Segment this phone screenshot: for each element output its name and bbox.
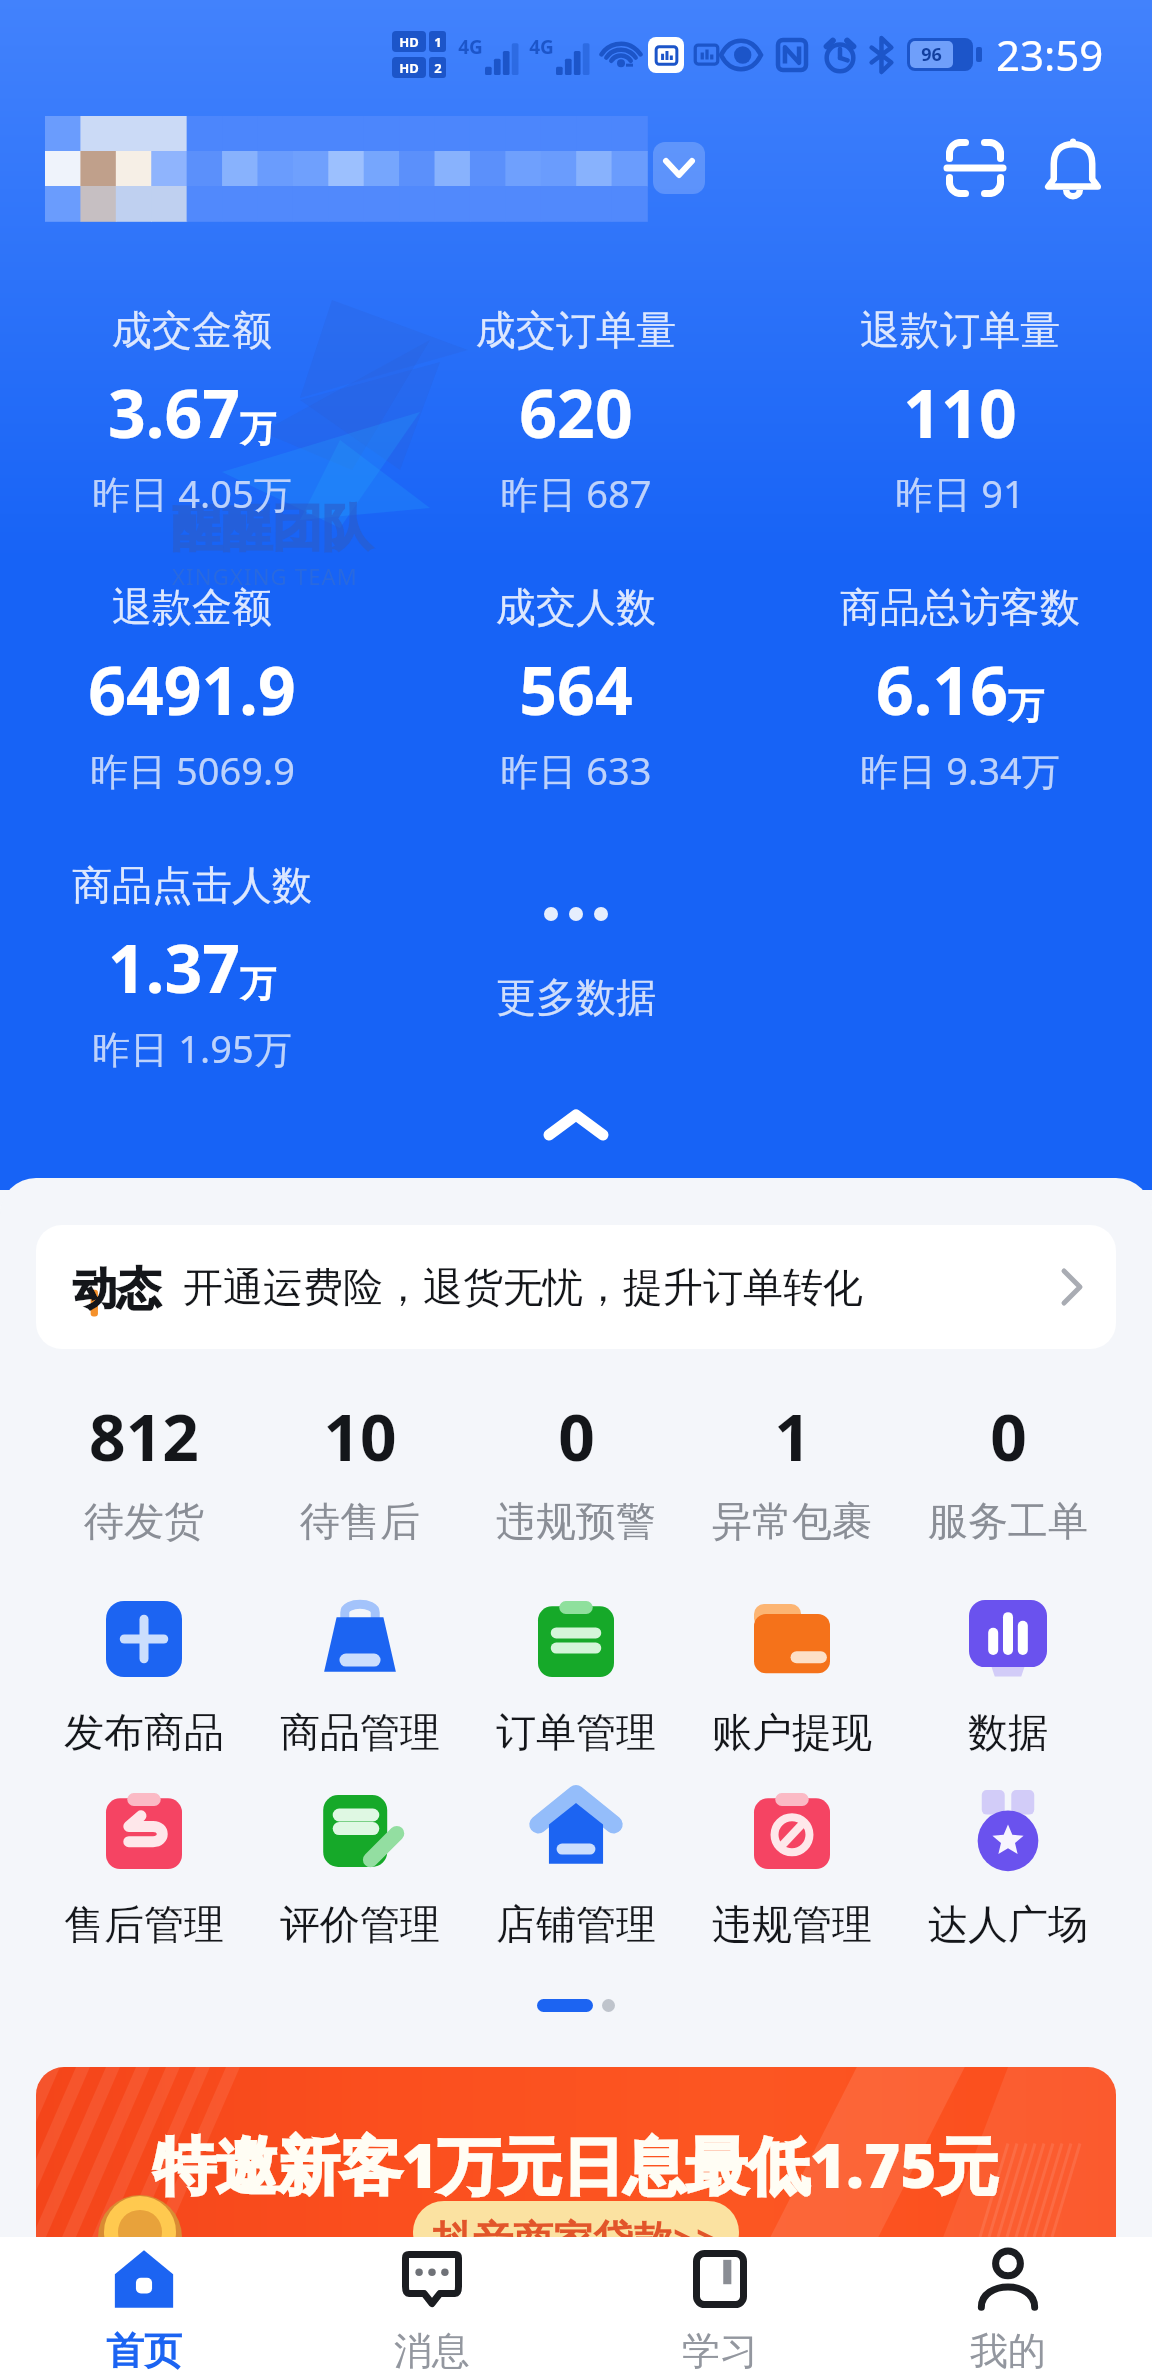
staticText: 1.37 (108, 922, 240, 1012)
staticText: 商品总访客数 (840, 582, 1080, 632)
staticText: 待售后 (300, 1496, 420, 1546)
staticText: 23:59 (996, 26, 1104, 83)
staticText: 商品管理 (280, 1707, 440, 1757)
staticText: 店铺管理 (496, 1899, 656, 1949)
staticText: 6.16 (876, 644, 1008, 734)
button[interactable]: 1 (684, 1393, 900, 1546)
button[interactable]: 0 (900, 1393, 1116, 1546)
staticText: 商品点击人数 (72, 860, 312, 910)
staticText: 学习 (682, 2327, 758, 2375)
staticText: 动态 (73, 1262, 161, 1317)
staticText: 万 (240, 406, 276, 451)
staticText: 达人广场 (928, 1899, 1088, 1949)
button[interactable]: 0 (468, 1393, 684, 1546)
staticText: 消息 (394, 2327, 470, 2375)
button[interactable]: Scan (932, 125, 1018, 211)
staticText: 成交金额 (112, 305, 272, 355)
button[interactable]: 商品总访客数 (768, 582, 1152, 796)
staticText: HD (399, 33, 419, 51)
staticText: 昨日 91 (895, 467, 1025, 519)
staticText: 待发货 (84, 1496, 204, 1546)
staticText: 0 (558, 1393, 595, 1480)
staticText: 开通运费险，退货无忧，提升订单转化 (183, 1262, 863, 1312)
staticText: 违规管理 (712, 1899, 872, 1949)
staticText: 订单管理 (496, 1707, 656, 1757)
button[interactable]: 动态 (36, 1225, 1116, 1349)
staticText: 昨日 5069.9 (90, 744, 295, 796)
button[interactable]: 商品管理 (252, 1597, 468, 1757)
button[interactable]: 售后管理 (36, 1789, 252, 1949)
staticText: 退款金额 (112, 582, 272, 632)
button[interactable]: 812 (36, 1393, 252, 1546)
button[interactable]: Switch shop (653, 142, 705, 194)
staticText: 异常包裹 (712, 1496, 872, 1546)
staticText: 评价管理 (280, 1899, 440, 1949)
staticText: 抖音商家贷款>> (433, 2211, 719, 2237)
button[interactable]: 成交金额 (0, 305, 384, 519)
button[interactable]: 订单管理 (468, 1597, 684, 1757)
button[interactable]: 更多数据 (384, 860, 768, 1022)
staticText: 昨日 1.95万 (92, 1022, 292, 1074)
staticText: 违规预警 (496, 1496, 656, 1546)
staticText: 更多数据 (496, 972, 656, 1022)
staticText: 620 (519, 367, 633, 457)
staticText: 昨日 633 (500, 744, 652, 796)
button[interactable] (45, 116, 647, 221)
staticText: 万 (1008, 683, 1044, 728)
staticText: 账户提现 (712, 1707, 872, 1757)
staticText: 96 (921, 42, 942, 67)
staticText: 2 (434, 59, 442, 77)
staticText: 服务工单 (928, 1496, 1088, 1546)
button[interactable]: 我的 (864, 2237, 1152, 2376)
staticText: 4G (458, 34, 483, 60)
staticText: 1 (774, 1393, 811, 1480)
staticText: 万 (240, 961, 276, 1006)
staticText: 3.67 (108, 367, 240, 457)
staticText: 醒醒团队 (172, 497, 372, 560)
staticText: 昨日 9.34万 (860, 744, 1060, 796)
button[interactable]: 店铺管理 (468, 1789, 684, 1949)
staticText: 成交人数 (496, 582, 656, 632)
button[interactable]: Notifications (1030, 125, 1116, 211)
staticText: 812 (89, 1393, 199, 1480)
staticText: 成交订单量 (476, 305, 676, 355)
button[interactable]: 退款金额 (0, 582, 384, 796)
staticText: 特邀新客1万元日息最低1.75元 (153, 2122, 999, 2207)
staticText: 110 (903, 367, 1017, 457)
staticText: 我的 (970, 2327, 1046, 2375)
button[interactable]: 发布商品 (36, 1597, 252, 1757)
staticText: 1 (434, 33, 442, 51)
button[interactable]: 学习 (576, 2237, 864, 2376)
staticText: 数据 (968, 1707, 1048, 1757)
button[interactable]: 特邀新客1万元日息最低1.75元 (36, 2067, 1116, 2237)
staticText: 6491.9 (88, 644, 296, 734)
staticText: 0 (990, 1393, 1027, 1480)
staticText: 退款订单量 (860, 305, 1060, 355)
button[interactable]: 退款订单量 (768, 305, 1152, 519)
staticText: 首页 (106, 2327, 182, 2375)
button[interactable]: 成交人数 (384, 582, 768, 796)
button[interactable]: Collapse panel (486, 1090, 666, 1160)
button[interactable]: 首页 (0, 2237, 288, 2376)
staticText: 4G (529, 34, 554, 60)
staticText: XINGXING TEAM (172, 561, 358, 591)
button[interactable]: 违规管理 (684, 1789, 900, 1949)
staticText: 售后管理 (64, 1899, 224, 1949)
staticText: HD (399, 59, 419, 77)
staticText: 昨日 4.05万 (92, 467, 292, 519)
staticText: 564 (519, 644, 633, 734)
button[interactable]: 10 (252, 1393, 468, 1546)
button[interactable]: 数据 (900, 1597, 1116, 1757)
button[interactable]: 成交订单量 (384, 305, 768, 519)
button[interactable]: 商品点击人数 (0, 860, 384, 1074)
staticText: 10 (323, 1393, 397, 1480)
button[interactable]: 账户提现 (684, 1597, 900, 1757)
button[interactable]: 达人广场 (900, 1789, 1116, 1949)
staticText: 昨日 687 (500, 467, 652, 519)
staticText: 发布商品 (64, 1707, 224, 1757)
button[interactable]: 评价管理 (252, 1789, 468, 1949)
button[interactable]: 消息 (288, 2237, 576, 2376)
